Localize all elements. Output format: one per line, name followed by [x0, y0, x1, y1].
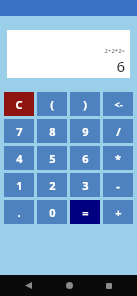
button[interactable]: = [70, 200, 100, 224]
staticText: / [116, 124, 121, 139]
staticText: - [116, 178, 120, 193]
staticText: 8 [49, 124, 56, 139]
button[interactable]: 2 [37, 173, 67, 197]
staticText: 6 [116, 56, 125, 76]
button[interactable]: 4 [4, 146, 34, 170]
button[interactable]: + [103, 200, 133, 224]
button[interactable]: * [103, 146, 133, 170]
button[interactable]: . [4, 200, 34, 224]
button[interactable]: 5 [37, 146, 67, 170]
button[interactable]: 8 [37, 119, 67, 143]
button[interactable]: 7 [4, 119, 34, 143]
staticText: 4 [16, 151, 23, 166]
button[interactable]: 1 [4, 173, 34, 197]
button[interactable]: - [103, 173, 133, 197]
button[interactable]: <- [103, 92, 133, 116]
button[interactable]: Home [57, 275, 81, 296]
staticText: C [15, 97, 23, 112]
staticText: ) [83, 97, 87, 112]
staticText: + [115, 205, 122, 220]
button[interactable]: 6 [70, 146, 100, 170]
staticText: 7 [16, 124, 23, 139]
staticText: <- [114, 98, 123, 110]
button[interactable]: 2+2*2= [7, 30, 130, 78]
staticText: 3 [82, 178, 89, 193]
button[interactable]: Recent apps [97, 275, 121, 296]
button[interactable]: ( [37, 92, 67, 116]
button[interactable]: 0 [37, 200, 67, 224]
staticText: 5 [49, 151, 56, 166]
button[interactable]: 9 [70, 119, 100, 143]
staticText: 9 [82, 124, 89, 139]
button[interactable]: C [4, 92, 34, 116]
staticText: 0 [49, 205, 56, 220]
staticText: . [17, 205, 21, 220]
button[interactable]: Back [16, 275, 40, 296]
staticText: 1 [16, 178, 23, 193]
staticText: 2+2*2= [104, 47, 125, 55]
staticText: = [82, 205, 89, 220]
staticText: 6 [82, 151, 89, 166]
button[interactable]: / [103, 119, 133, 143]
staticText: * [115, 151, 121, 166]
button[interactable]: 3 [70, 173, 100, 197]
staticText: 2 [49, 178, 56, 193]
button[interactable]: ) [70, 92, 100, 116]
staticText: ( [50, 97, 54, 112]
